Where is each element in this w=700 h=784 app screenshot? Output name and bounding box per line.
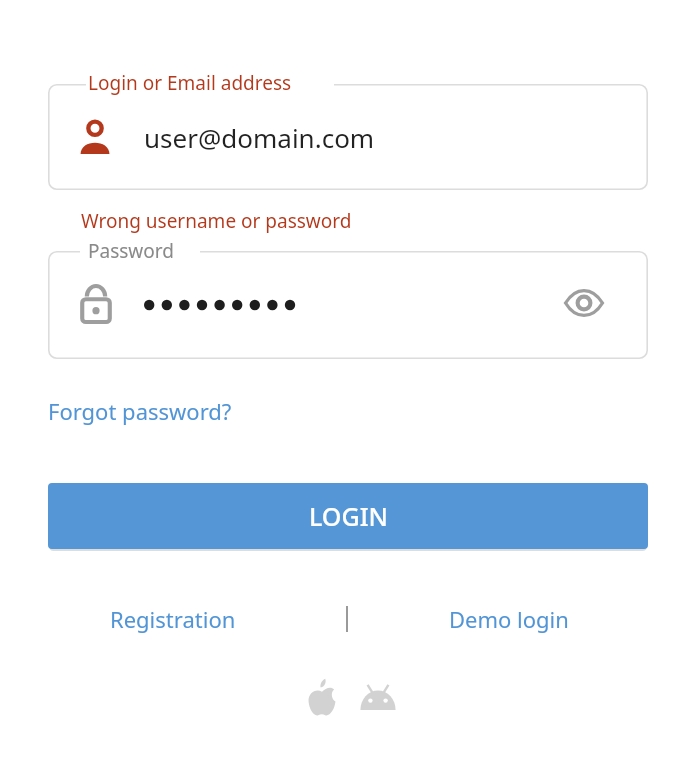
staticText: Forgot password? xyxy=(48,396,232,426)
button[interactable]: user@domain.com xyxy=(48,84,648,190)
other: iOS app xyxy=(306,678,338,716)
button[interactable]: Demo login xyxy=(449,604,569,634)
button[interactable]: Show password xyxy=(48,251,648,359)
staticText: user@domain.com xyxy=(144,120,375,155)
staticText: Wrong username or password xyxy=(81,208,352,234)
staticText: Password xyxy=(88,238,174,264)
staticText: Login or Email address xyxy=(88,70,292,96)
staticText: Demo login xyxy=(449,604,569,634)
other: Android app xyxy=(358,682,398,710)
button[interactable]: Forgot password? xyxy=(48,396,232,426)
button[interactable]: LOGIN xyxy=(48,483,648,549)
button[interactable]: Show password xyxy=(562,281,606,325)
staticText: Registration xyxy=(110,604,236,634)
button[interactable]: Registration xyxy=(110,604,236,634)
staticText: LOGIN xyxy=(309,499,388,533)
